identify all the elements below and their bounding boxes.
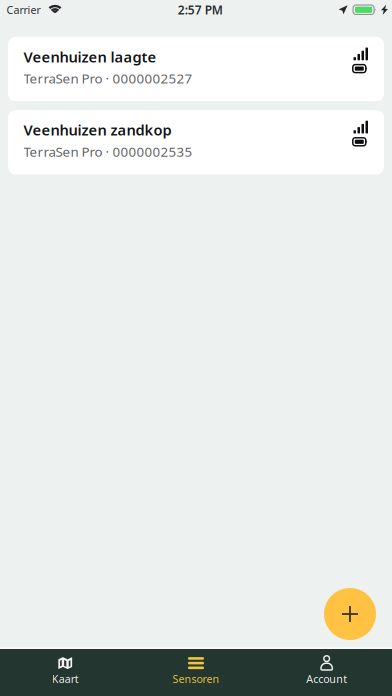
button[interactable]: Kaart xyxy=(0,648,131,696)
staticText: 2:57 PM xyxy=(178,2,223,18)
button[interactable]: Add sensor xyxy=(324,588,376,640)
staticText: Veenhuizen laagte xyxy=(23,47,156,66)
staticText: Account xyxy=(306,672,347,686)
button[interactable]: Veenhuizen zandkop xyxy=(8,110,384,174)
staticText: TerraSen Pro · 0000002527 xyxy=(23,69,192,87)
staticText: Sensoren xyxy=(172,672,219,686)
button[interactable]: Account xyxy=(261,648,392,696)
staticText: Veenhuizen zandkop xyxy=(23,120,171,140)
staticText: TerraSen Pro · 0000002535 xyxy=(23,143,192,160)
staticText: Carrier xyxy=(6,3,40,17)
button[interactable]: Sensoren xyxy=(131,648,261,696)
button[interactable]: Veenhuizen laagte xyxy=(8,37,384,101)
staticText: Kaart xyxy=(52,672,79,686)
